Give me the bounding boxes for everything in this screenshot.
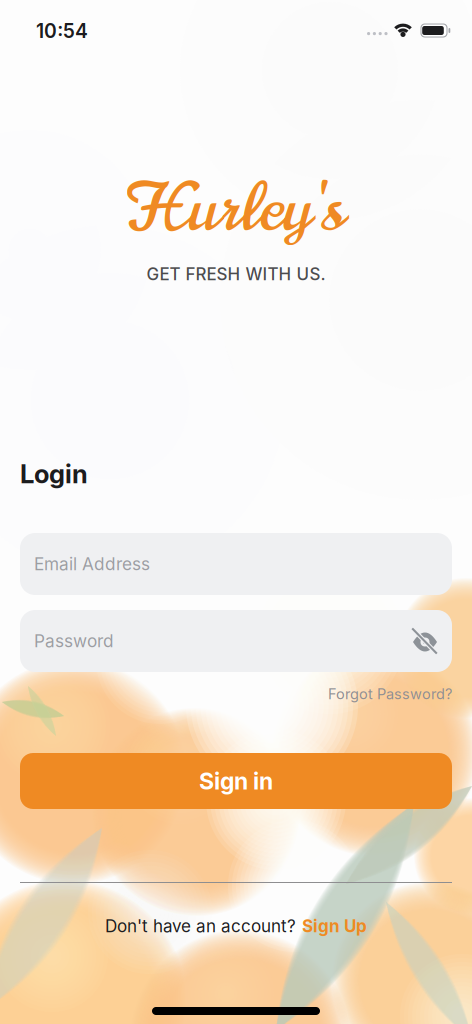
button[interactable]: Sign Up [302, 916, 367, 936]
staticText: GET FRESH WITH US. [146, 264, 325, 284]
staticText: Sign Up [302, 916, 367, 936]
button[interactable]: Forgot Password? [252, 681, 452, 707]
staticText: Don't have an account? [105, 916, 296, 936]
button[interactable]: Sign in [20, 753, 452, 809]
staticText: Hurley's [127, 161, 345, 255]
staticText: Sign in [199, 767, 273, 795]
button[interactable]: Show password [410, 624, 440, 658]
staticText: Email Address [34, 554, 150, 574]
staticText: Forgot Password? [328, 685, 452, 703]
staticText: Password [34, 631, 114, 651]
staticText: 10:54 [36, 19, 88, 43]
staticText: Login [20, 458, 88, 489]
